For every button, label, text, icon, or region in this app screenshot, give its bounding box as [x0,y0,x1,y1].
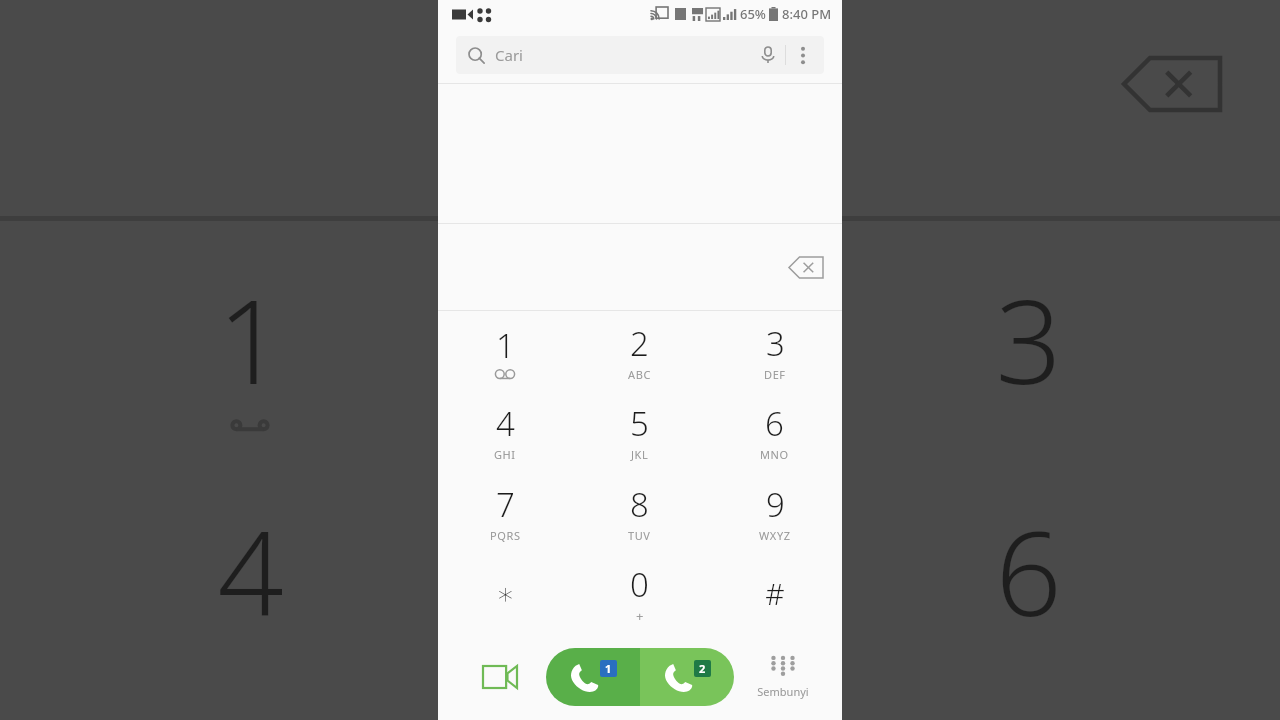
staticText: PQRS [490,528,521,543]
staticText: 0 [630,562,649,607]
staticText: Cari [495,45,523,65]
button[interactable]: 0 [572,553,707,634]
button[interactable]: Video call [474,651,526,703]
button[interactable]: 5 [572,391,707,472]
staticText: # [765,573,785,614]
staticText: 1 [605,661,612,676]
staticText: 8:40 PM [782,5,832,23]
staticText: 1 [496,323,515,368]
staticText: MNO [760,447,789,462]
button[interactable]: Backspace [782,249,830,285]
staticText: 1 [217,260,284,418]
button[interactable]: ∗ [438,553,572,634]
staticText: 3 [995,260,1062,418]
staticText: GHI [494,447,516,462]
button[interactable]: 6 [707,391,842,472]
button[interactable]: 7 [438,472,572,553]
button[interactable]: Cari [456,36,824,74]
button[interactable]: # [707,553,842,634]
staticText: 8 [630,482,649,527]
button[interactable]: 9 [707,472,842,553]
staticText: 3 [766,321,785,366]
staticText: 65% [740,5,766,23]
staticText: 4 [496,401,515,446]
staticText: 9 [766,482,785,527]
staticText: Sembunyi [757,684,809,699]
staticText: ABC [628,367,651,382]
staticText: 5 [630,401,649,446]
button[interactable]: Call with SIM 2 [640,648,734,706]
staticText: DEF [764,367,786,382]
staticText: JKL [631,447,649,462]
staticText: 2 [699,661,706,676]
button[interactable]: 4 [438,391,572,472]
button[interactable]: Sembunyi [748,656,818,699]
button[interactable]: 3 [707,311,842,391]
staticText: TUV [628,528,651,543]
button[interactable]: 8 [572,472,707,553]
staticText: WXYZ [759,528,791,543]
button[interactable]: Call with SIM 1 [546,648,640,706]
button[interactable]: More options [786,38,820,72]
staticText: 7 [496,482,515,527]
button[interactable]: Voice search [751,38,785,72]
staticText: 6 [995,492,1062,650]
staticText: 4 [217,492,284,650]
button[interactable]: 2 [572,311,707,391]
staticText: 2 [630,321,649,366]
staticText: ∗ [496,576,515,611]
staticText: 6 [765,401,784,446]
staticText: + [636,607,644,625]
button[interactable]: 1 [438,311,572,391]
